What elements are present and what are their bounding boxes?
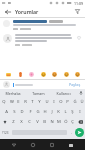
- button[interactable]: .: [69, 127, 75, 138]
- button[interactable]: U: [43, 97, 50, 107]
- button[interactable]: ?123: [1, 127, 10, 138]
- button[interactable]: Emoji 4: [50, 70, 58, 78]
- staticText: Ş: [71, 109, 74, 115]
- button[interactable]: V: [33, 117, 41, 127]
- button[interactable]: Filter: [73, 7, 82, 16]
- button[interactable]: Recents: [47, 140, 57, 150]
- button[interactable]: Kullanıcı: [51, 89, 76, 97]
- button[interactable]: Ğ: [71, 97, 78, 107]
- button[interactable]: D: [18, 107, 26, 117]
- staticText: Merhaba: [5, 91, 21, 96]
- button[interactable]: A: [2, 107, 10, 117]
- staticText: M: [57, 119, 61, 125]
- staticText: Y: [38, 99, 41, 105]
- button[interactable]: W: [8, 97, 15, 107]
- button[interactable]: H: [41, 107, 48, 117]
- button[interactable]: Merhaba: [0, 89, 26, 97]
- button[interactable]: Ü: [78, 97, 85, 107]
- button[interactable]: Emoji 5: [62, 70, 70, 78]
- staticText: Q: [2, 99, 6, 105]
- button[interactable]: T: [29, 97, 36, 107]
- staticText: V: [36, 119, 39, 125]
- button[interactable]: F: [26, 107, 34, 117]
- staticText: K: [57, 109, 60, 115]
- button[interactable]: Shift: [0, 117, 9, 127]
- button[interactable]: Paylaş: [68, 81, 82, 88]
- button[interactable]: Keyboard: [66, 140, 76, 150]
- button[interactable]: Ş: [69, 107, 76, 117]
- button[interactable]: E: [15, 97, 22, 107]
- staticText: P: [66, 99, 69, 105]
- staticText: F: [29, 109, 32, 115]
- staticText: D: [20, 109, 24, 115]
- button[interactable]: Q: [0, 97, 8, 107]
- staticText: I: [79, 109, 81, 115]
- staticText: Tamam: [32, 91, 45, 96]
- staticText: R: [24, 99, 27, 105]
- staticText: Paylaş: [69, 82, 81, 87]
- button[interactable]: Send: [75, 128, 84, 137]
- button[interactable]: Emoji 3: [39, 70, 47, 78]
- staticText: Ü: [80, 99, 84, 105]
- button[interactable]: Emoji 6: [73, 70, 81, 78]
- staticText: J: [51, 109, 53, 115]
- button[interactable]: K: [55, 107, 62, 117]
- staticText: N: [50, 119, 54, 125]
- staticText: U: [45, 99, 49, 105]
- button[interactable]: Back: [9, 140, 19, 150]
- button[interactable]: G: [34, 107, 41, 117]
- button[interactable]: B: [41, 117, 48, 127]
- staticText: O: [59, 99, 63, 105]
- button[interactable]: Ç: [69, 117, 76, 127]
- button[interactable]: Home: [28, 140, 38, 150]
- button[interactable]: I: [76, 107, 83, 117]
- staticText: C: [28, 119, 31, 125]
- staticText: Kullanıcı: [56, 91, 71, 96]
- staticText: E: [17, 99, 20, 105]
- button[interactable]: X: [17, 117, 25, 127]
- staticText: Ç: [71, 119, 74, 125]
- button[interactable]: S: [10, 107, 18, 117]
- button[interactable]: Ö: [62, 117, 69, 127]
- button[interactable]: M: [55, 117, 62, 127]
- button[interactable]: Backspace: [76, 117, 85, 127]
- button[interactable]: Like: [0, 32, 85, 48]
- staticText: S: [13, 109, 16, 115]
- staticText: X: [20, 119, 23, 125]
- button[interactable]: N: [48, 117, 55, 127]
- staticText: Z: [12, 119, 15, 125]
- staticText: 11:09: [74, 1, 83, 6]
- staticText: I: [53, 99, 55, 105]
- button[interactable]: Y: [36, 97, 43, 107]
- staticText: B: [43, 119, 46, 125]
- button[interactable]: [15, 84, 68, 86]
- staticText: G: [36, 109, 40, 115]
- button[interactable]: O: [57, 97, 64, 107]
- staticText: H: [43, 109, 47, 115]
- button[interactable]: I: [50, 97, 57, 107]
- button[interactable]: P: [64, 97, 71, 107]
- button[interactable]: L: [62, 107, 69, 117]
- button[interactable]: Like: [75, 34, 82, 41]
- button[interactable]: Emoji 0: [4, 70, 12, 78]
- button[interactable]: Tamam: [26, 89, 51, 97]
- button[interactable]: C: [25, 117, 33, 127]
- button[interactable]: Voice input: [76, 89, 85, 97]
- staticText: T: [31, 99, 34, 105]
- button[interactable]: Z: [9, 117, 17, 127]
- staticText: Yorumlar: [15, 8, 39, 15]
- button[interactable]: J: [48, 107, 55, 117]
- staticText: .: [71, 130, 73, 135]
- button[interactable]: R: [22, 97, 29, 107]
- button[interactable]: Emoji 2: [27, 70, 35, 78]
- button[interactable]: Back: [3, 7, 12, 16]
- staticText: Ö: [64, 119, 68, 125]
- staticText: ?123: [2, 131, 9, 135]
- button[interactable]: Emoji 1: [16, 70, 24, 78]
- staticText: L: [64, 109, 67, 115]
- staticText: A: [5, 109, 8, 115]
- staticText: Ğ: [73, 99, 77, 105]
- staticText: W: [10, 99, 14, 105]
